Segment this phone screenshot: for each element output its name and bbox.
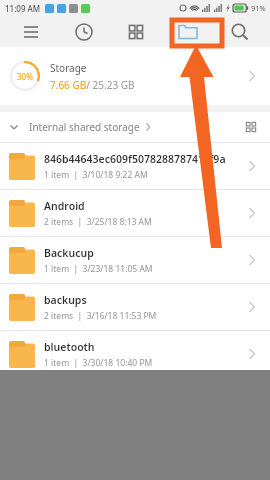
button[interactable]: Grid view bbox=[240, 116, 262, 138]
button[interactable]: Android bbox=[0, 190, 270, 236]
button[interactable]: Open bbox=[242, 297, 262, 317]
button[interactable]: Open bbox=[242, 203, 262, 223]
staticText: 91% bbox=[251, 3, 266, 13]
button[interactable]: Open bbox=[242, 156, 262, 176]
staticText: 846b44643ec609f507828878741 f9a bbox=[44, 152, 226, 166]
staticText: 1 item | 3/23/18 11:05 AM bbox=[44, 263, 153, 275]
staticText: Android bbox=[44, 199, 85, 213]
staticText: 30% bbox=[17, 71, 33, 82]
button[interactable]: Open bbox=[242, 344, 262, 364]
button[interactable]: backups bbox=[0, 284, 270, 330]
button[interactable]: Categories bbox=[110, 16, 162, 47]
staticText: Backucup bbox=[44, 246, 94, 260]
button[interactable]: 30% bbox=[0, 47, 270, 105]
staticText: backups bbox=[44, 293, 87, 307]
staticText: 7.66 GB/ 25.23 GB bbox=[50, 78, 135, 92]
staticText: Storage bbox=[50, 61, 87, 75]
staticText: 2 items | 3/16/18 11:53 PM bbox=[44, 310, 157, 322]
button[interactable]: 846b44643ec609f507828878741 f9a bbox=[0, 143, 270, 189]
button[interactable]: bluetooth bbox=[0, 331, 270, 377]
staticText: 1 item | 3/10/18 9:22 AM bbox=[44, 169, 148, 181]
button[interactable]: Recent bbox=[57, 16, 110, 47]
button[interactable]: Files bbox=[162, 16, 214, 47]
staticText: 2 items | 3/25/18 8:13 AM bbox=[44, 216, 152, 228]
button[interactable]: Internal shared storage bbox=[0, 112, 270, 142]
staticText: bluetooth bbox=[44, 340, 95, 354]
button[interactable]: Open bbox=[242, 66, 262, 86]
button[interactable]: Backucup bbox=[0, 237, 270, 283]
staticText: 11:09 AM bbox=[5, 3, 41, 14]
button[interactable]: Menu bbox=[4, 16, 57, 47]
button[interactable]: Search bbox=[214, 16, 266, 47]
button[interactable]: Open bbox=[242, 250, 262, 270]
staticText: 1 item | 3/30/18 10:40 PM bbox=[44, 357, 153, 369]
staticText: Internal shared storage bbox=[29, 120, 140, 134]
